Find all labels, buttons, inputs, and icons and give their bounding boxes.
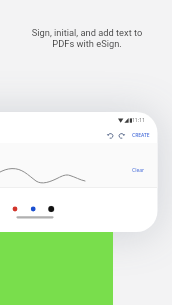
staticText: Sign, initial, and add text to PDFs with… (1, 27, 172, 49)
staticText: Clear (132, 167, 145, 174)
button[interactable]: Clear (130, 165, 147, 176)
staticText: CREATE (132, 132, 150, 139)
button[interactable]: CREATE (129, 130, 153, 141)
staticText: 11:11 (132, 117, 145, 124)
button[interactable]: Undo (105, 130, 115, 140)
button[interactable]: Redo (116, 130, 126, 140)
